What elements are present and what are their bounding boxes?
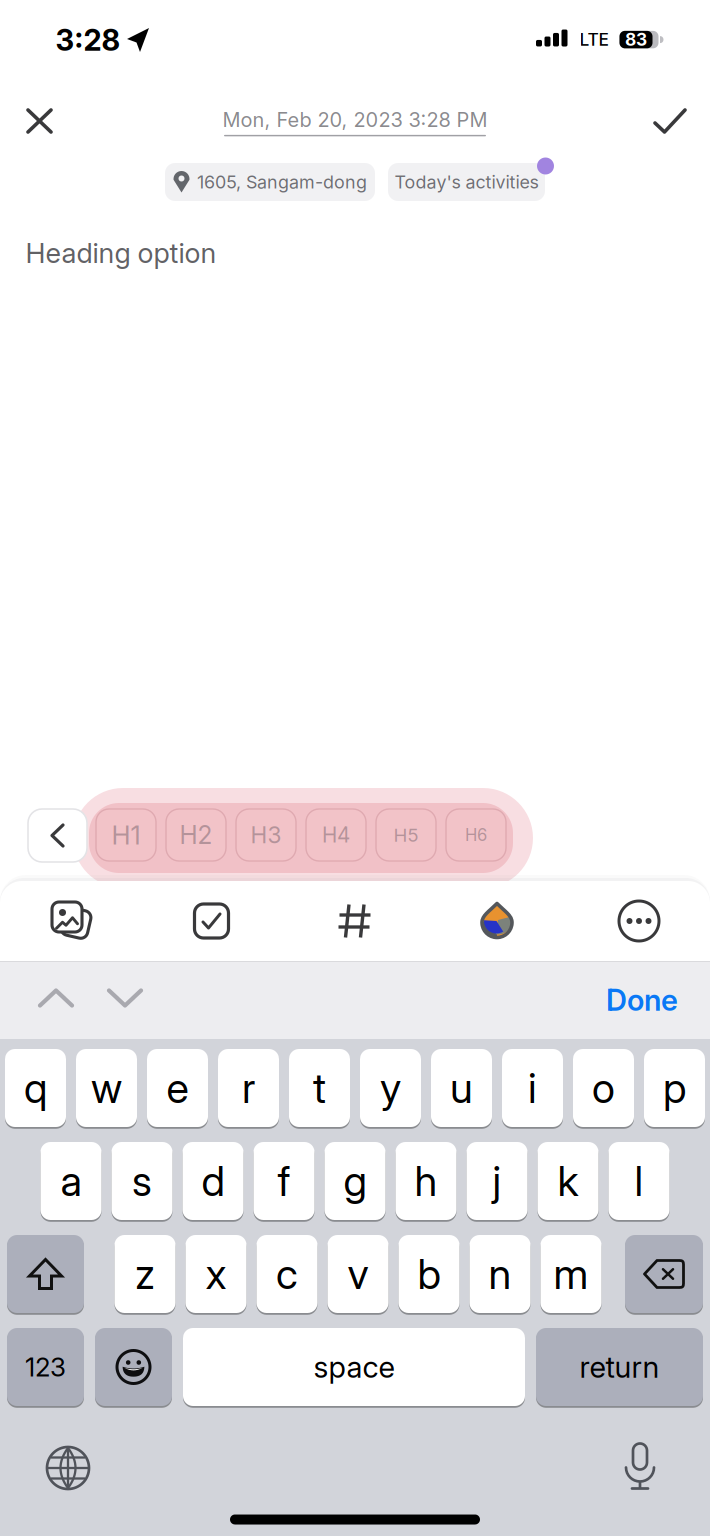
staticText: d [201,1156,224,1206]
button[interactable]: 1605, Sangam-dong [165,163,375,201]
button[interactable]: H4 [306,809,366,861]
staticText: t [313,1063,326,1113]
staticText: y [380,1063,401,1113]
button[interactable]: z [114,1234,175,1314]
button[interactable]: H1 [96,809,156,861]
button[interactable]: 123 [7,1327,84,1407]
button[interactable]: Previous field [40,990,72,1005]
button[interactable]: Add photo [52,902,90,940]
button[interactable]: f [253,1141,314,1221]
button[interactable]: t [289,1048,350,1128]
staticText: u [450,1063,473,1113]
button[interactable]: return [536,1327,703,1407]
button[interactable]: a [40,1141,101,1221]
button[interactable]: Add checklist [194,904,228,938]
button[interactable]: j [466,1141,527,1221]
staticText: l [634,1156,643,1206]
staticText: Today's activities [394,171,538,193]
staticText: z [135,1249,155,1299]
button[interactable]: Delete [625,1234,703,1314]
staticText: w [91,1063,122,1113]
button[interactable]: i [502,1048,563,1128]
button[interactable]: b [398,1234,459,1314]
staticText: b [417,1249,440,1299]
button[interactable]: Add tag [338,904,370,937]
button[interactable]: More options [619,901,659,941]
button[interactable]: space [183,1327,525,1407]
button[interactable]: o [573,1048,634,1128]
button[interactable]: g [324,1141,385,1221]
staticText: 83 [625,29,647,50]
staticText: space [313,1349,394,1385]
staticText: Done [606,982,678,1018]
staticText: x [205,1249,226,1299]
staticText: H4 [322,822,350,847]
button[interactable]: Next keyboard [47,1447,89,1489]
staticText: H5 [393,824,418,846]
button[interactable]: Shift [7,1234,84,1314]
staticText: 123 [25,1351,66,1383]
button[interactable]: e [147,1048,208,1128]
button[interactable]: Highlight color [482,903,512,937]
staticText: H2 [179,820,212,850]
button[interactable]: d [182,1141,243,1221]
button[interactable]: k [537,1141,598,1221]
staticText: 3:28 [55,22,120,58]
staticText: i [528,1063,537,1113]
staticText: n [488,1249,511,1299]
button[interactable]: w [76,1048,137,1128]
staticText: k [557,1156,578,1206]
button[interactable]: v [327,1234,388,1314]
staticText: p [663,1063,686,1113]
staticText: Heading option [25,236,216,270]
staticText: 1605, Sangam-dong [197,171,367,193]
button[interactable]: Emoji [95,1327,172,1407]
button[interactable]: H2 [166,809,226,861]
staticText: return [579,1349,659,1385]
button[interactable]: Done [606,982,678,1018]
button[interactable]: q [5,1048,66,1128]
button[interactable]: s [111,1141,172,1221]
button[interactable]: x [185,1234,246,1314]
button[interactable]: H6 [446,809,506,861]
button[interactable]: p [644,1048,705,1128]
staticText: q [24,1063,47,1113]
button[interactable]: H5 [376,809,436,861]
button[interactable]: Dictate [626,1443,654,1488]
staticText: a [60,1156,81,1206]
staticText: H6 [465,825,487,845]
staticText: LTE [579,29,608,50]
staticText: H3 [250,821,281,849]
staticText: c [276,1249,298,1299]
button[interactable]: Mon, Feb 20, 2023 3:28 PM [222,108,487,136]
button[interactable]: u [431,1048,492,1128]
button[interactable]: Today's activities [388,163,545,201]
staticText: H1 [111,819,140,851]
staticText: j [492,1156,501,1206]
button[interactable]: m [540,1234,601,1314]
button[interactable]: c [256,1234,317,1314]
staticText: h [414,1156,437,1206]
staticText: r [242,1063,255,1113]
staticText: m [553,1249,588,1299]
button[interactable]: l [608,1141,669,1221]
staticText: s [132,1156,152,1206]
button[interactable]: n [469,1234,530,1314]
button[interactable]: Save [655,110,685,132]
button[interactable]: r [218,1048,279,1128]
button[interactable]: h [395,1141,456,1221]
staticText: Mon, Feb 20, 2023 3:28 PM [222,108,487,132]
button[interactable]: y [360,1048,421,1128]
staticText: v [347,1249,368,1299]
button[interactable]: Next field [109,990,141,1005]
button[interactable]: H3 [236,809,296,861]
staticText: g [343,1156,366,1206]
button[interactable]: Close [28,110,51,132]
button[interactable]: Hide formatting options [28,809,87,862]
staticText: f [277,1156,290,1206]
staticText: e [166,1063,188,1113]
staticText: o [592,1063,615,1113]
